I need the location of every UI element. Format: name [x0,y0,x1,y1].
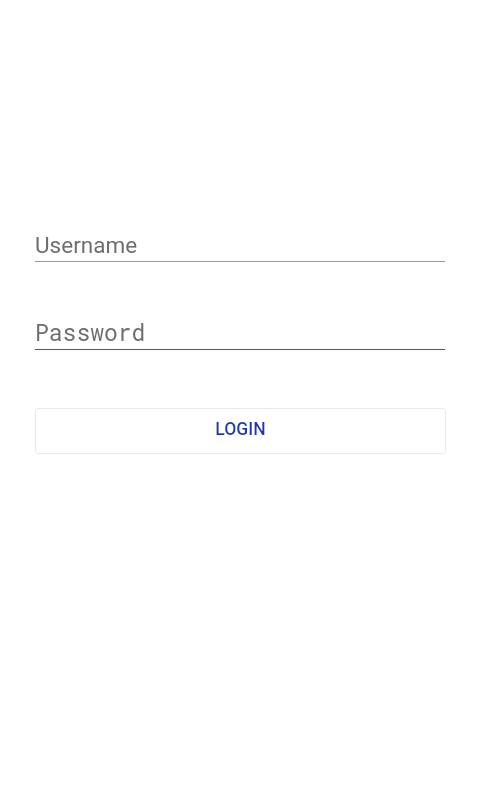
button[interactable]: LOGIN [35,408,446,454]
button[interactable]: Password input field [35,317,445,350]
staticText: Username [35,232,138,258]
button[interactable]: Username input field [35,227,445,262]
staticText: Password [35,317,146,347]
staticText: LOGIN [215,419,266,440]
